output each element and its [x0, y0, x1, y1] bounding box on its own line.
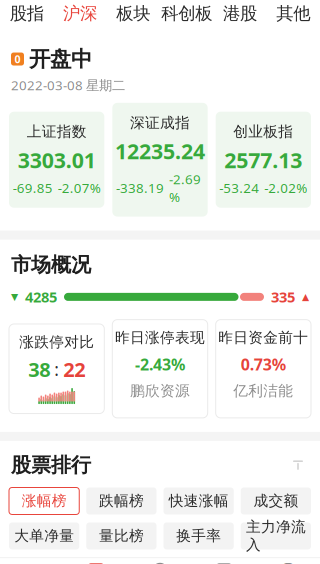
staticText: :: [54, 358, 59, 381]
button[interactable]: 科创板: [160, 0, 213, 32]
staticText: Ω: [280, 556, 295, 564]
staticText: -2.02%: [264, 179, 307, 197]
staticText: -338.19: [116, 179, 164, 197]
button[interactable]: 昨日涨停表现: [112, 320, 208, 418]
staticText: -2.69%: [169, 170, 201, 206]
button[interactable]: 筛选: [287, 454, 309, 476]
staticText: -2.07%: [58, 179, 101, 197]
button[interactable]: 交易: [128, 558, 192, 564]
staticText: 换手率: [176, 527, 221, 545]
button[interactable]: 涨幅榜: [9, 487, 79, 514]
staticText: 科创板: [161, 3, 212, 24]
button[interactable]: 创业板指: [216, 112, 311, 208]
staticText: 4285: [25, 287, 57, 307]
button[interactable]: 深证成指: [112, 103, 208, 217]
staticText: 深证成指: [130, 114, 190, 132]
button[interactable]: 港股: [213, 0, 267, 32]
staticText: 板块: [116, 3, 150, 24]
button[interactable]: 昨日资金前十: [216, 320, 311, 418]
staticText: ▲: [302, 292, 309, 302]
button[interactable]: Ω: [256, 558, 320, 564]
staticText: 2577.13: [224, 146, 302, 174]
button[interactable]: 跌幅榜: [86, 487, 156, 514]
staticText: 量比榜: [99, 527, 144, 545]
staticText: 鹏欣资源: [130, 382, 190, 400]
staticText: 股指: [10, 3, 44, 24]
button[interactable]: 沪深: [53, 0, 107, 32]
staticText: -53.24: [219, 179, 259, 197]
button[interactable]: 上证指数: [9, 112, 104, 208]
staticText: -2.43%: [135, 354, 185, 375]
staticText: ∿: [90, 562, 102, 564]
staticText: 沪深: [63, 3, 97, 24]
button[interactable]: 成交额: [241, 487, 311, 514]
button[interactable]: 板块: [107, 0, 160, 32]
button[interactable]: 其他: [267, 0, 320, 32]
staticText: 涨跌停对比: [19, 333, 94, 351]
staticText: 市场概况: [11, 253, 91, 277]
button[interactable]: 快速涨幅: [163, 487, 234, 514]
staticText: -69.85: [13, 179, 53, 197]
staticText: 创业板指: [233, 123, 293, 141]
staticText: 港股: [223, 3, 257, 24]
staticText: 上证指数: [27, 123, 87, 141]
staticText: 22: [63, 356, 85, 383]
staticText: 其他: [276, 3, 310, 24]
staticText: 昨日涨停表现: [115, 329, 205, 347]
button[interactable]: 量比榜: [86, 522, 156, 549]
staticText: 大单净量: [14, 527, 74, 545]
staticText: 股票排行: [11, 453, 91, 477]
staticText: 3303.01: [18, 146, 96, 174]
staticText: 快速涨幅: [169, 492, 229, 510]
staticText: 跌幅榜: [99, 492, 144, 510]
button[interactable]: 主力净流入: [241, 522, 311, 549]
button[interactable]: ∿: [64, 558, 128, 564]
staticText: 涨幅榜: [22, 492, 67, 510]
button[interactable]: 股指: [0, 0, 53, 32]
staticText: 昨日资金前十: [218, 329, 308, 347]
staticText: 0.73%: [241, 354, 286, 375]
staticText: 亿利洁能: [233, 382, 293, 400]
button[interactable]: 大单净量: [9, 522, 79, 549]
button[interactable]: 换手率: [163, 522, 234, 549]
staticText: 2022-03-08 星期二: [11, 76, 125, 94]
staticText: 主力净流入: [246, 518, 306, 554]
staticText: ▼: [11, 292, 18, 302]
button[interactable]: 涨跌停对比: [9, 324, 104, 414]
staticText: 成交额: [253, 492, 298, 510]
staticText: 12235.24: [115, 137, 205, 165]
staticText: 开盘中: [29, 46, 92, 72]
staticText: 38: [28, 356, 50, 383]
staticText: 0: [14, 52, 20, 66]
button[interactable]: 理财: [192, 558, 256, 564]
staticText: 335: [271, 287, 295, 307]
